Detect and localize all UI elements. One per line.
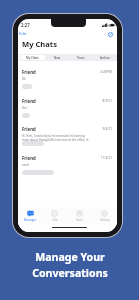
button[interactable]: Friend bbox=[18, 153, 117, 182]
staticText: Conversations bbox=[32, 266, 108, 280]
staticText: 2:27 bbox=[21, 22, 30, 28]
button[interactable]: Team bbox=[69, 55, 93, 60]
staticText: New bbox=[54, 56, 61, 60]
button[interactable]: Friend bbox=[18, 96, 117, 125]
staticText: 9/2/21 bbox=[18, 127, 112, 131]
staticText: Friend bbox=[22, 98, 36, 104]
button[interactable]: New bbox=[45, 55, 69, 60]
staticText: Team bbox=[77, 56, 85, 60]
staticText: Messages bbox=[24, 218, 37, 222]
staticText: Friend bbox=[22, 126, 36, 132]
staticText: Team bbox=[76, 218, 83, 222]
button[interactable]: My Chats bbox=[20, 55, 45, 60]
staticText: Edit bbox=[19, 31, 27, 36]
button[interactable]: Friend bbox=[18, 124, 117, 153]
staticText: Hi Trish, I noticed you're interested in… bbox=[22, 134, 85, 138]
button[interactable]: Settings bbox=[92, 207, 117, 222]
staticText: 2:28 PM bbox=[18, 70, 112, 74]
staticText: Friend bbox=[22, 69, 36, 75]
button[interactable]: Calls bbox=[42, 207, 67, 222]
staticText: Ok bbox=[22, 77, 26, 81]
staticText: Archive bbox=[100, 56, 111, 60]
staticText: My Chats bbox=[22, 39, 57, 49]
staticText: 8/7/21 bbox=[18, 99, 112, 103]
staticText: need bbox=[22, 163, 29, 167]
staticText: Friend bbox=[22, 155, 36, 161]
button[interactable]: Messages bbox=[18, 207, 42, 222]
button[interactable]: Friend bbox=[18, 67, 117, 96]
button[interactable]: Compose new message bbox=[106, 30, 114, 38]
staticText: Settings bbox=[100, 218, 110, 222]
staticText: Manage Your bbox=[35, 250, 105, 264]
staticText: Calls bbox=[52, 218, 58, 222]
button[interactable]: Team bbox=[67, 207, 92, 222]
button[interactable]: Archive bbox=[93, 55, 117, 60]
staticText: 11/3/21 bbox=[18, 156, 112, 160]
button[interactable]: Edit bbox=[18, 30, 29, 37]
staticText: more about VoyageGifts I am one of the o… bbox=[22, 138, 91, 142]
staticText: My Chats bbox=[26, 56, 39, 60]
staticText: Yes ! bbox=[22, 106, 29, 110]
